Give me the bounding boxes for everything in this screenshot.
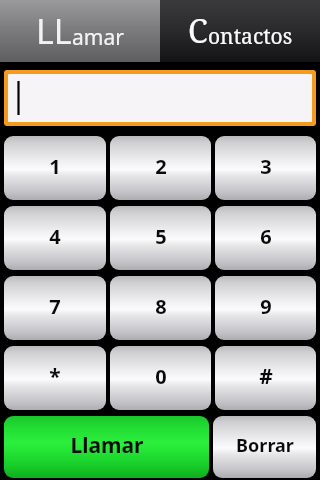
button[interactable]: 9 [215,276,316,340]
staticText: 0 [155,363,167,390]
button[interactable]: * [4,346,106,410]
staticText: Borrar [236,433,294,458]
staticText: Llamar [70,431,144,460]
staticText: LL [36,8,72,54]
button[interactable]: C [160,0,320,62]
staticText: * [49,362,61,391]
button[interactable]: 0 [110,346,211,410]
staticText: 7 [49,293,61,320]
staticText: 8 [155,293,167,320]
button[interactable]: 2 [110,136,211,200]
button[interactable]: 5 [110,206,211,270]
staticText: 6 [260,223,272,250]
button[interactable] [8,74,312,122]
staticText: 1 [49,153,61,180]
staticText: 9 [260,293,272,320]
button[interactable]: 4 [4,206,106,270]
staticText: 5 [155,223,167,250]
staticText: amar [72,23,124,52]
button[interactable]: 1 [4,136,106,200]
staticText: C [188,9,208,53]
staticText: # [259,362,273,391]
button[interactable]: 3 [215,136,316,200]
staticText: 2 [155,153,167,180]
button[interactable]: LL [0,0,160,62]
staticText: 4 [49,223,61,250]
button[interactable]: # [215,346,316,410]
button[interactable]: Llamar [4,416,209,478]
button[interactable]: Borrar [213,416,316,478]
staticText: ontactos [208,22,293,51]
button[interactable]: 8 [110,276,211,340]
button[interactable]: 6 [215,206,316,270]
button[interactable]: 7 [4,276,106,340]
staticText: 3 [260,153,272,180]
